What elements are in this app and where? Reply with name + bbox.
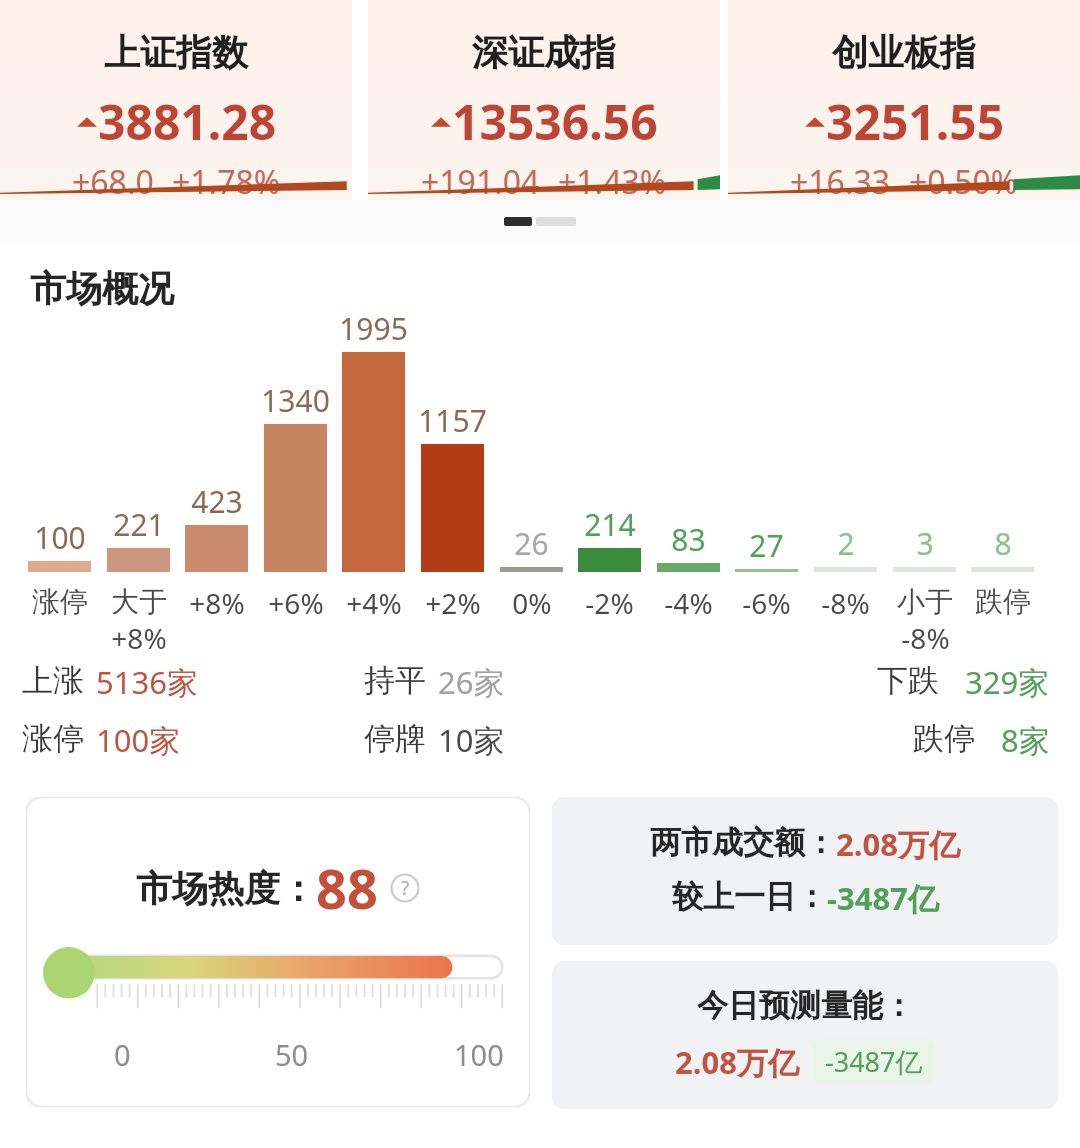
staticText: -6% [742,584,791,622]
staticText: 停牌 [364,719,426,758]
staticText: 上涨 [22,661,84,700]
staticText: 较上一日： [672,877,827,916]
staticText: +16.33 [790,160,891,200]
staticText: 221 [113,504,165,545]
staticText: 88 [316,851,378,925]
staticText: 2.08万亿 [836,823,960,865]
staticText: 涨停 [32,584,88,619]
staticText: +8% [189,584,245,622]
staticText: 5136家 [96,661,198,703]
staticText: ? [401,875,410,901]
staticText: -2% [585,584,634,622]
staticText: 跌停 [975,584,1031,619]
staticText: +1.43% [558,160,667,200]
staticText: +191.04 [421,160,540,200]
staticText: +4% [346,584,402,622]
staticText: 10家 [438,719,505,761]
staticText: 1340 [261,380,330,421]
staticText: 214 [584,504,636,545]
staticText: 2.08万亿 [675,1041,799,1083]
staticText: -8% [821,584,870,622]
staticText: 市场概况 [30,266,174,311]
button[interactable]: 上证指数 [0,0,352,200]
staticText: +2% [425,584,481,622]
staticText: 深证成指 [472,30,616,75]
staticText: 26家 [438,661,505,703]
staticText: 423 [191,481,243,522]
staticText: 3251.55 [826,89,1005,154]
staticText: +1.78% [172,160,281,200]
staticText: 1995 [339,308,408,349]
staticText: 2 [837,523,855,564]
button[interactable]: 两市成交额： [552,797,1058,945]
staticText: 100家 [96,719,181,761]
button[interactable]: 深证成指 [368,0,720,200]
staticText: 8家 [1001,719,1050,761]
button[interactable]: 创业板指 [728,0,1080,200]
staticText: 329家 [965,661,1050,703]
staticText: +68.0 [72,160,154,200]
staticText: 跌停 [913,719,975,758]
staticText: 持平 [364,661,426,700]
button[interactable]: 今日预测量能： [552,961,1058,1109]
staticText: -3487亿 [825,1043,923,1080]
staticText: 8 [994,523,1012,564]
staticText: 今日预测量能： [697,986,914,1025]
button[interactable]: 市场热度： [26,797,530,1107]
staticText: 0% [512,584,552,622]
staticText: +8% [111,619,167,657]
staticText: 100 [454,1035,504,1074]
staticText: 27 [749,525,784,566]
staticText: 小于 [897,584,953,619]
staticText: 3881.28 [98,89,277,154]
staticText: 下跌 [877,661,939,700]
staticText: -8% [901,619,950,657]
staticText: 26 [514,523,549,564]
staticText: 3 [916,523,934,564]
staticText: 大于 [111,584,167,619]
staticText: -4% [664,584,713,622]
staticText: 100 [34,517,86,558]
staticText: +6% [268,584,324,622]
staticText: 两市成交额： [650,823,836,862]
staticText: 上证指数 [104,30,248,75]
staticText: 创业板指 [832,30,976,75]
staticText: -3487亿 [827,877,939,919]
staticText: 13536.56 [452,89,658,154]
button[interactable]: 说明 [390,873,420,903]
staticText: 50 [275,1035,309,1074]
staticText: 83 [671,519,706,560]
staticText: 1157 [418,400,487,441]
staticText: 市场热度： [136,866,316,911]
staticText: 涨停 [22,719,84,758]
staticText: 0 [114,1035,131,1074]
staticText: +0.50% [909,160,1018,200]
